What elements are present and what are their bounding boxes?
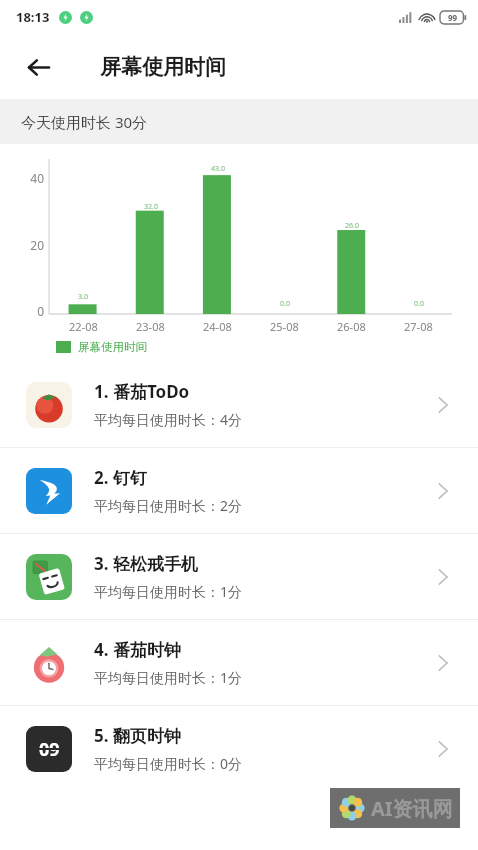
button[interactable]: 1. 番茄ToDo xyxy=(0,362,478,447)
staticText: 屏幕使用时间 xyxy=(78,340,147,354)
staticText: 40 xyxy=(22,170,44,186)
staticText: 5. 翻页时钟 xyxy=(94,724,181,747)
other: Details xyxy=(428,390,458,420)
button[interactable]: 4. 番茄时钟 xyxy=(0,620,478,705)
staticText: 0.0 xyxy=(280,299,290,309)
other: Details xyxy=(428,734,458,764)
button[interactable]: Back xyxy=(18,47,58,87)
staticText: 23-08 xyxy=(136,319,165,334)
staticText: 18:13 xyxy=(16,8,50,26)
button[interactable]: 3. 轻松戒手机 xyxy=(0,534,478,619)
button[interactable]: 09 xyxy=(0,706,478,791)
staticText: 43.0 xyxy=(211,164,225,174)
staticText: 3.0 xyxy=(78,292,88,302)
staticText: 屏幕使用时间 xyxy=(100,54,226,80)
staticText: 平均每日使用时长：4分 xyxy=(94,410,243,429)
staticText: 26.0 xyxy=(345,221,359,231)
staticText: 27-08 xyxy=(404,319,433,334)
staticText: 09 xyxy=(39,737,60,762)
staticText: AI资讯网 xyxy=(371,795,453,822)
staticText: 20 xyxy=(22,237,44,253)
staticText: 26-08 xyxy=(337,319,366,334)
other: Details xyxy=(428,562,458,592)
staticText: 4. 番茄时钟 xyxy=(94,638,181,661)
staticText: 99 xyxy=(448,12,458,23)
staticText: 25-08 xyxy=(270,319,299,334)
staticText: 平均每日使用时长：2分 xyxy=(94,496,243,515)
other: Details xyxy=(428,476,458,506)
staticText: 今天使用时长 30分 xyxy=(21,112,148,132)
button[interactable]: 2. 钉钉 xyxy=(0,448,478,533)
staticText: 平均每日使用时长：1分 xyxy=(94,582,243,601)
staticText: 0 xyxy=(22,303,44,319)
staticText: 3. 轻松戒手机 xyxy=(94,552,198,575)
staticText: 0.0 xyxy=(414,299,424,309)
other: Details xyxy=(428,648,458,678)
staticText: 2. 钉钉 xyxy=(94,466,147,489)
staticText: 平均每日使用时长：0分 xyxy=(94,754,243,773)
staticText: 22-08 xyxy=(69,319,98,334)
staticText: 32.0 xyxy=(144,202,158,212)
staticText: 平均每日使用时长：1分 xyxy=(94,668,243,687)
staticText: 24-08 xyxy=(203,319,232,334)
staticText: 1. 番茄ToDo xyxy=(94,380,190,403)
